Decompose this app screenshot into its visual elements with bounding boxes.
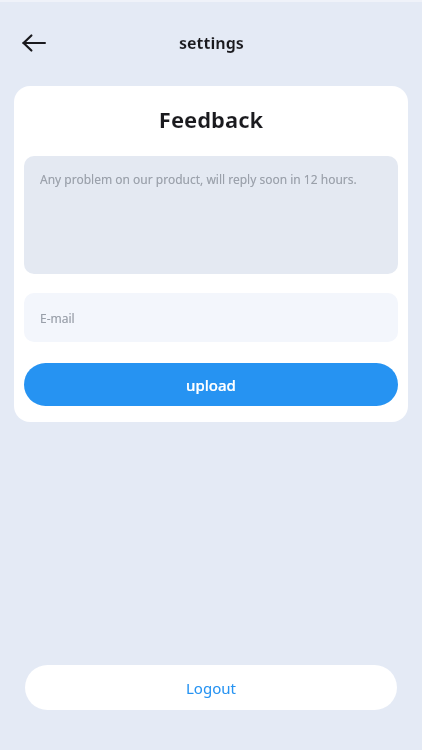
staticText: E-mail: [40, 310, 75, 326]
button[interactable]: Logout: [25, 665, 397, 710]
button[interactable]: upload: [24, 363, 398, 406]
staticText: Logout: [186, 678, 236, 698]
button[interactable]: Any problem on our product, will reply s…: [24, 156, 398, 274]
staticText: settings: [179, 32, 244, 54]
staticText: Any problem on our product, will reply s…: [40, 171, 357, 187]
button[interactable]: E-mail: [24, 293, 398, 342]
staticText: upload: [186, 375, 236, 395]
button[interactable]: Back: [10, 19, 58, 67]
staticText: Feedback: [14, 104, 408, 134]
